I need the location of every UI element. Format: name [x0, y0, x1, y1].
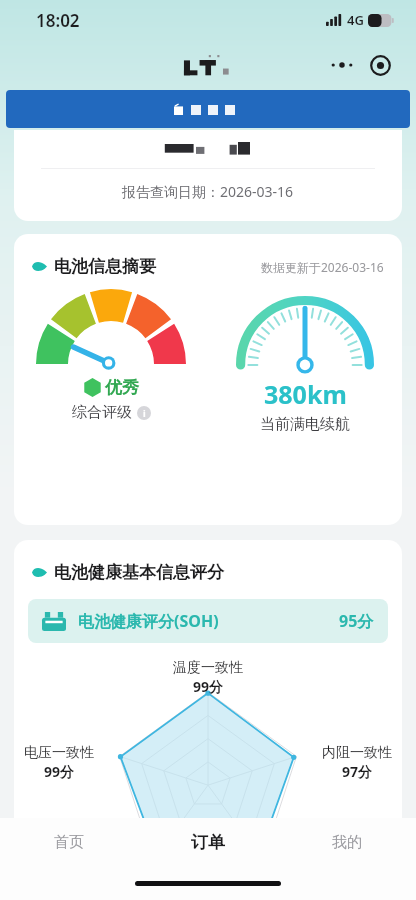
- button[interactable]: 电池健康评分(SOH): [28, 599, 388, 643]
- button[interactable]: [6, 90, 410, 128]
- button[interactable]: 首页: [0, 818, 138, 866]
- staticText: 99分: [44, 762, 75, 781]
- staticText: 首页: [54, 833, 84, 852]
- staticText: 电池健康评分(SOH): [78, 610, 219, 632]
- button[interactable]: Close: [362, 47, 398, 83]
- staticText: 我的: [332, 833, 362, 852]
- staticText: i: [143, 407, 146, 419]
- staticText: 电池健康基本信息评分: [54, 562, 224, 583]
- staticText: 内阻一致性: [322, 744, 392, 762]
- button[interactable]: Info: [137, 406, 151, 420]
- button[interactable]: More options: [324, 47, 360, 83]
- staticText: 18:02: [36, 9, 80, 32]
- staticText: 380km: [264, 377, 347, 411]
- staticText: 4G: [347, 11, 364, 29]
- staticText: 订单: [191, 832, 225, 853]
- staticText: 报告查询日期：2026-03-16: [122, 182, 294, 201]
- staticText: 当前满电续航: [260, 415, 350, 434]
- staticText: 数据更新于2026-03-16: [261, 259, 384, 275]
- button[interactable]: 我的: [277, 818, 416, 866]
- staticText: 电压一致性: [24, 744, 94, 762]
- staticText: 99分: [193, 677, 224, 696]
- staticText: 优秀: [105, 377, 139, 398]
- staticText: 95分: [339, 610, 374, 632]
- staticText: 温度一致性: [173, 659, 243, 677]
- staticText: 电池信息摘要: [54, 256, 156, 277]
- button[interactable]: 订单: [138, 818, 277, 866]
- staticText: 97分: [342, 762, 373, 781]
- staticText: 综合评级: [72, 403, 132, 422]
